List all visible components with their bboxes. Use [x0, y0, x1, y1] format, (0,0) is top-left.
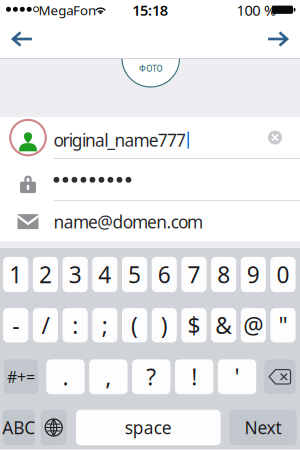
button[interactable]: ' [218, 359, 256, 394]
button[interactable]: . [46, 359, 85, 394]
button[interactable]: : [63, 308, 88, 342]
button[interactable]: " [270, 308, 296, 342]
staticText: name@domen.com [53, 210, 203, 233]
button[interactable]: Next keyboard [41, 410, 67, 445]
button[interactable]: 2 [33, 257, 58, 292]
staticText: 4 [98, 259, 111, 289]
button[interactable]: / [33, 308, 58, 342]
button[interactable]: 3 [63, 257, 88, 292]
button[interactable]: ( [122, 308, 147, 342]
staticText: & [215, 310, 232, 340]
button[interactable]: 1 [3, 257, 28, 292]
button[interactable]: 6 [152, 257, 177, 292]
button[interactable]: , [89, 359, 127, 394]
button[interactable] [0, 159, 300, 200]
staticText: original_name777 [53, 129, 186, 152]
button[interactable]: Next [229, 410, 297, 445]
button[interactable]: Back [0, 20, 44, 58]
staticText: ' [234, 362, 239, 392]
staticText: " [278, 310, 287, 340]
staticText: 5 [128, 259, 141, 289]
staticText: ABC [2, 416, 35, 439]
staticText: 3 [69, 259, 82, 289]
button[interactable]: - [3, 308, 28, 342]
button[interactable]: & [211, 308, 236, 342]
staticText: space [125, 416, 172, 439]
staticText: - [12, 310, 19, 340]
staticText: ! [191, 362, 197, 392]
staticText: Next [244, 416, 281, 439]
staticText: 0 [276, 259, 289, 289]
staticText: ( [131, 310, 138, 340]
staticText: ? [146, 362, 156, 392]
staticText: 15:18 [132, 0, 168, 20]
staticText: 6 [158, 259, 171, 289]
staticText: MegaFon [38, 1, 96, 19]
button[interactable]: $ [181, 308, 206, 342]
button[interactable]: @ [241, 308, 266, 342]
staticText: 7 [187, 259, 200, 289]
button[interactable]: Delete [264, 359, 296, 394]
button[interactable]: ABC [3, 410, 35, 445]
button[interactable]: 9 [241, 257, 266, 292]
button[interactable]: 7 [181, 257, 206, 292]
button[interactable]: 8 [211, 257, 236, 292]
staticText: 8 [217, 259, 230, 289]
button[interactable]: ) [152, 308, 177, 342]
button[interactable]: ; [92, 308, 117, 342]
staticText: #+= [7, 366, 35, 387]
staticText: : [72, 310, 78, 340]
staticText: / [41, 310, 49, 340]
staticText: ; [102, 310, 108, 340]
button[interactable]: Next step [256, 20, 300, 58]
button[interactable]: original_name777 [0, 117, 300, 158]
button[interactable]: space [76, 410, 221, 445]
staticText: ) [161, 310, 168, 340]
button[interactable]: 5 [122, 257, 147, 292]
button[interactable]: name@domen.com [0, 201, 300, 242]
staticText: $ [187, 310, 200, 340]
staticText: 1 [9, 259, 22, 289]
staticText: 2 [39, 259, 52, 289]
staticText: 9 [247, 259, 260, 289]
staticText: , [105, 362, 111, 392]
staticText: . [62, 362, 68, 392]
staticText: @ [243, 310, 263, 340]
staticText: ФОТО [139, 63, 162, 74]
button[interactable]: 4 [92, 257, 117, 292]
button[interactable]: ! [175, 359, 213, 394]
staticText: 100 % [236, 0, 276, 20]
button[interactable]: #+= [4, 359, 38, 394]
button[interactable]: ? [132, 359, 170, 394]
button[interactable]: 0 [270, 257, 296, 292]
